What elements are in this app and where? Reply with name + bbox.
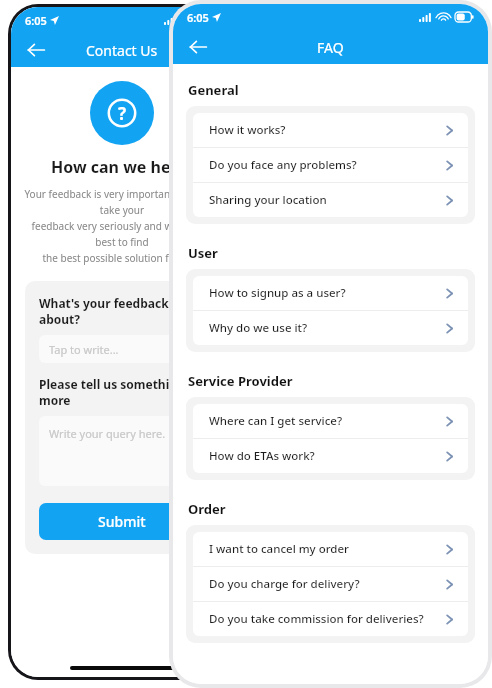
staticText: Service Provider xyxy=(188,372,293,390)
staticText: How to signup as a user? xyxy=(209,285,437,301)
button[interactable]: Do you charge for delivery? xyxy=(193,567,468,601)
button[interactable]: How do ETAs work? xyxy=(193,439,468,473)
button[interactable]: Do you face any problems? xyxy=(193,148,468,182)
staticText: Submit xyxy=(98,512,146,531)
button[interactable]: Do you take commission for deliveries? xyxy=(193,602,468,636)
staticText: User xyxy=(188,244,218,262)
button[interactable]: Back xyxy=(21,35,51,65)
staticText: Do you face any problems? xyxy=(209,157,437,173)
button[interactable]: Why do we use it? xyxy=(193,311,468,345)
staticText: Write your query here. xyxy=(49,426,166,441)
staticText: How can we help? xyxy=(51,156,194,178)
staticText: Do you take commission for deliveries? xyxy=(209,611,437,627)
staticText: Why do we use it? xyxy=(209,320,437,336)
staticText: FAQ xyxy=(317,38,344,57)
staticText: Please tell us something more xyxy=(39,376,205,408)
staticText: Order xyxy=(188,500,226,518)
staticText: How do ETAs work? xyxy=(209,448,437,464)
staticText: 6:05 xyxy=(187,10,209,25)
button[interactable]: How it works? xyxy=(193,113,468,147)
staticText: What's your feedback about? xyxy=(39,295,205,327)
staticText: Sharing your location xyxy=(209,192,437,208)
staticText: Where can I get service? xyxy=(209,413,437,429)
button[interactable]: Write your query here. xyxy=(39,416,205,486)
staticText: Contact Us xyxy=(86,41,158,60)
staticText: Your feedback is very important to us. W… xyxy=(23,187,221,264)
button[interactable]: Submit xyxy=(39,503,205,540)
staticText: Do you charge for delivery? xyxy=(209,576,437,592)
staticText: General xyxy=(188,81,239,99)
staticText: ? xyxy=(118,102,127,125)
button[interactable]: I want to cancel my order xyxy=(193,532,468,566)
staticText: How it works? xyxy=(209,122,437,138)
staticText: 6:05 xyxy=(25,13,47,28)
staticText: Tap to write... xyxy=(49,342,119,357)
button[interactable]: Tap to write... xyxy=(39,335,205,363)
button[interactable]: How to signup as a user? xyxy=(193,276,468,310)
staticText: I want to cancel my order xyxy=(209,541,437,557)
button[interactable]: Back xyxy=(183,32,213,62)
button[interactable]: Where can I get service? xyxy=(193,404,468,438)
button[interactable]: Sharing your location xyxy=(193,183,468,217)
